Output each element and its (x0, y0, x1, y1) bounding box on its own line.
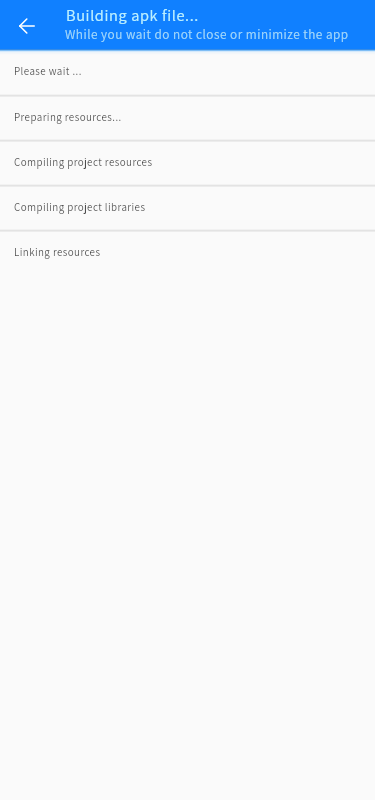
staticText: Compiling project libraries (14, 200, 146, 214)
button[interactable]: Back (0, 0, 52, 49)
button[interactable]: Linking resources (0, 232, 375, 274)
staticText: Linking resources (14, 245, 101, 259)
staticText: Preparing resources... (14, 110, 122, 124)
staticText: Building apk file... (66, 4, 199, 25)
button[interactable]: Compiling project libraries (0, 187, 375, 229)
staticText: Compiling project resources (14, 155, 153, 169)
button[interactable]: Compiling project resources (0, 142, 375, 184)
staticText: While you wait do not close or minimize … (65, 26, 349, 43)
staticText: Please wait ... (14, 64, 82, 78)
button[interactable]: Preparing resources... (0, 97, 375, 139)
button[interactable]: Please wait ... (0, 49, 375, 94)
